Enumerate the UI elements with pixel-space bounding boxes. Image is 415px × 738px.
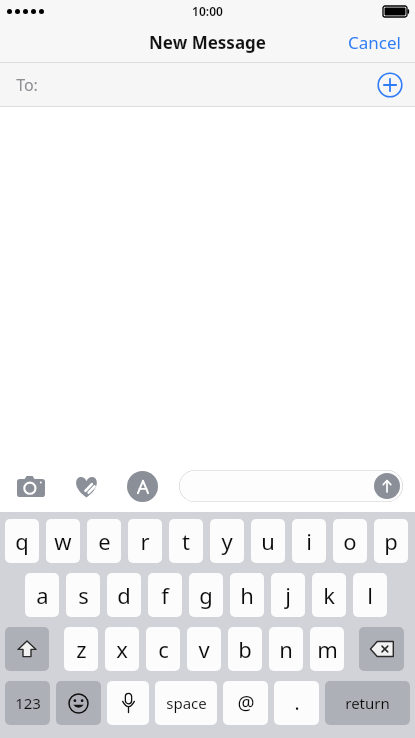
staticText: New Message — [149, 31, 266, 54]
button[interactable]: space — [155, 681, 217, 725]
staticText: 123 — [15, 693, 41, 713]
staticText: b — [238, 634, 252, 664]
staticText: o — [343, 526, 357, 556]
staticText: s — [78, 580, 89, 610]
staticText: . — [294, 690, 300, 716]
button[interactable]: Digital Touch — [71, 471, 101, 501]
button[interactable]: z — [64, 627, 98, 671]
staticText: z — [76, 634, 87, 664]
button[interactable]: @ — [223, 681, 268, 725]
staticText: w — [54, 526, 72, 556]
button[interactable]: Shift — [5, 627, 49, 671]
button[interactable]: r — [128, 519, 162, 563]
button[interactable]: s — [66, 573, 100, 617]
staticText: c — [158, 634, 169, 664]
button[interactable]: App Store — [127, 471, 158, 502]
staticText: k — [323, 580, 335, 610]
button[interactable]: j — [271, 573, 305, 617]
button[interactable]: b — [228, 627, 262, 671]
button[interactable]: return — [325, 681, 410, 725]
button[interactable]: Camera — [16, 471, 46, 501]
button[interactable]: p — [374, 519, 408, 563]
staticText: space — [166, 693, 207, 713]
button[interactable]: Cancel — [334, 25, 415, 60]
staticText: return — [345, 693, 390, 713]
staticText: t — [182, 526, 190, 556]
staticText: x — [116, 634, 128, 664]
button[interactable]: w — [46, 519, 80, 563]
staticText: q — [15, 526, 29, 556]
staticText: To: — [16, 74, 38, 96]
staticText: y — [221, 526, 233, 556]
button[interactable]: g — [189, 573, 223, 617]
button[interactable]: f — [148, 573, 182, 617]
button[interactable]: u — [251, 519, 285, 563]
button[interactable]: q — [5, 519, 39, 563]
button[interactable]: h — [230, 573, 264, 617]
button[interactable]: . — [274, 681, 319, 725]
button[interactable]: Send — [179, 470, 403, 502]
staticText: i — [306, 526, 312, 556]
button[interactable]: Send — [374, 473, 400, 499]
button[interactable]: Emoji — [56, 681, 101, 725]
button[interactable]: m — [310, 627, 344, 671]
button[interactable]: a — [25, 573, 59, 617]
button[interactable]: Backspace — [359, 627, 404, 671]
staticText: e — [98, 526, 111, 556]
staticText: @ — [237, 690, 255, 716]
staticText: d — [117, 580, 131, 610]
button[interactable]: l — [353, 573, 387, 617]
button[interactable]: x — [105, 627, 139, 671]
button[interactable]: e — [87, 519, 121, 563]
button[interactable]: y — [210, 519, 244, 563]
button[interactable]: c — [146, 627, 180, 671]
staticText: u — [261, 526, 275, 556]
staticText: g — [199, 580, 213, 610]
staticText: 10:00 — [192, 3, 223, 19]
button[interactable]: o — [333, 519, 367, 563]
button[interactable]: t — [169, 519, 203, 563]
button[interactable]: 123 — [5, 681, 50, 725]
staticText: n — [279, 634, 293, 664]
button[interactable]: d — [107, 573, 141, 617]
button[interactable]: Add contact — [377, 72, 403, 98]
button[interactable]: To: — [0, 63, 415, 106]
staticText: f — [161, 580, 169, 610]
staticText: j — [285, 580, 291, 610]
staticText: a — [36, 580, 49, 610]
button[interactable]: i — [292, 519, 326, 563]
button[interactable]: n — [269, 627, 303, 671]
staticText: m — [317, 634, 338, 664]
staticText: h — [240, 580, 254, 610]
staticText: l — [367, 580, 373, 610]
staticText: p — [384, 526, 398, 556]
staticText: v — [198, 634, 210, 664]
staticText: r — [140, 526, 150, 556]
button[interactable]: Dictation — [107, 681, 149, 725]
button[interactable]: k — [312, 573, 346, 617]
button[interactable]: v — [187, 627, 221, 671]
staticText: Cancel — [348, 31, 401, 54]
